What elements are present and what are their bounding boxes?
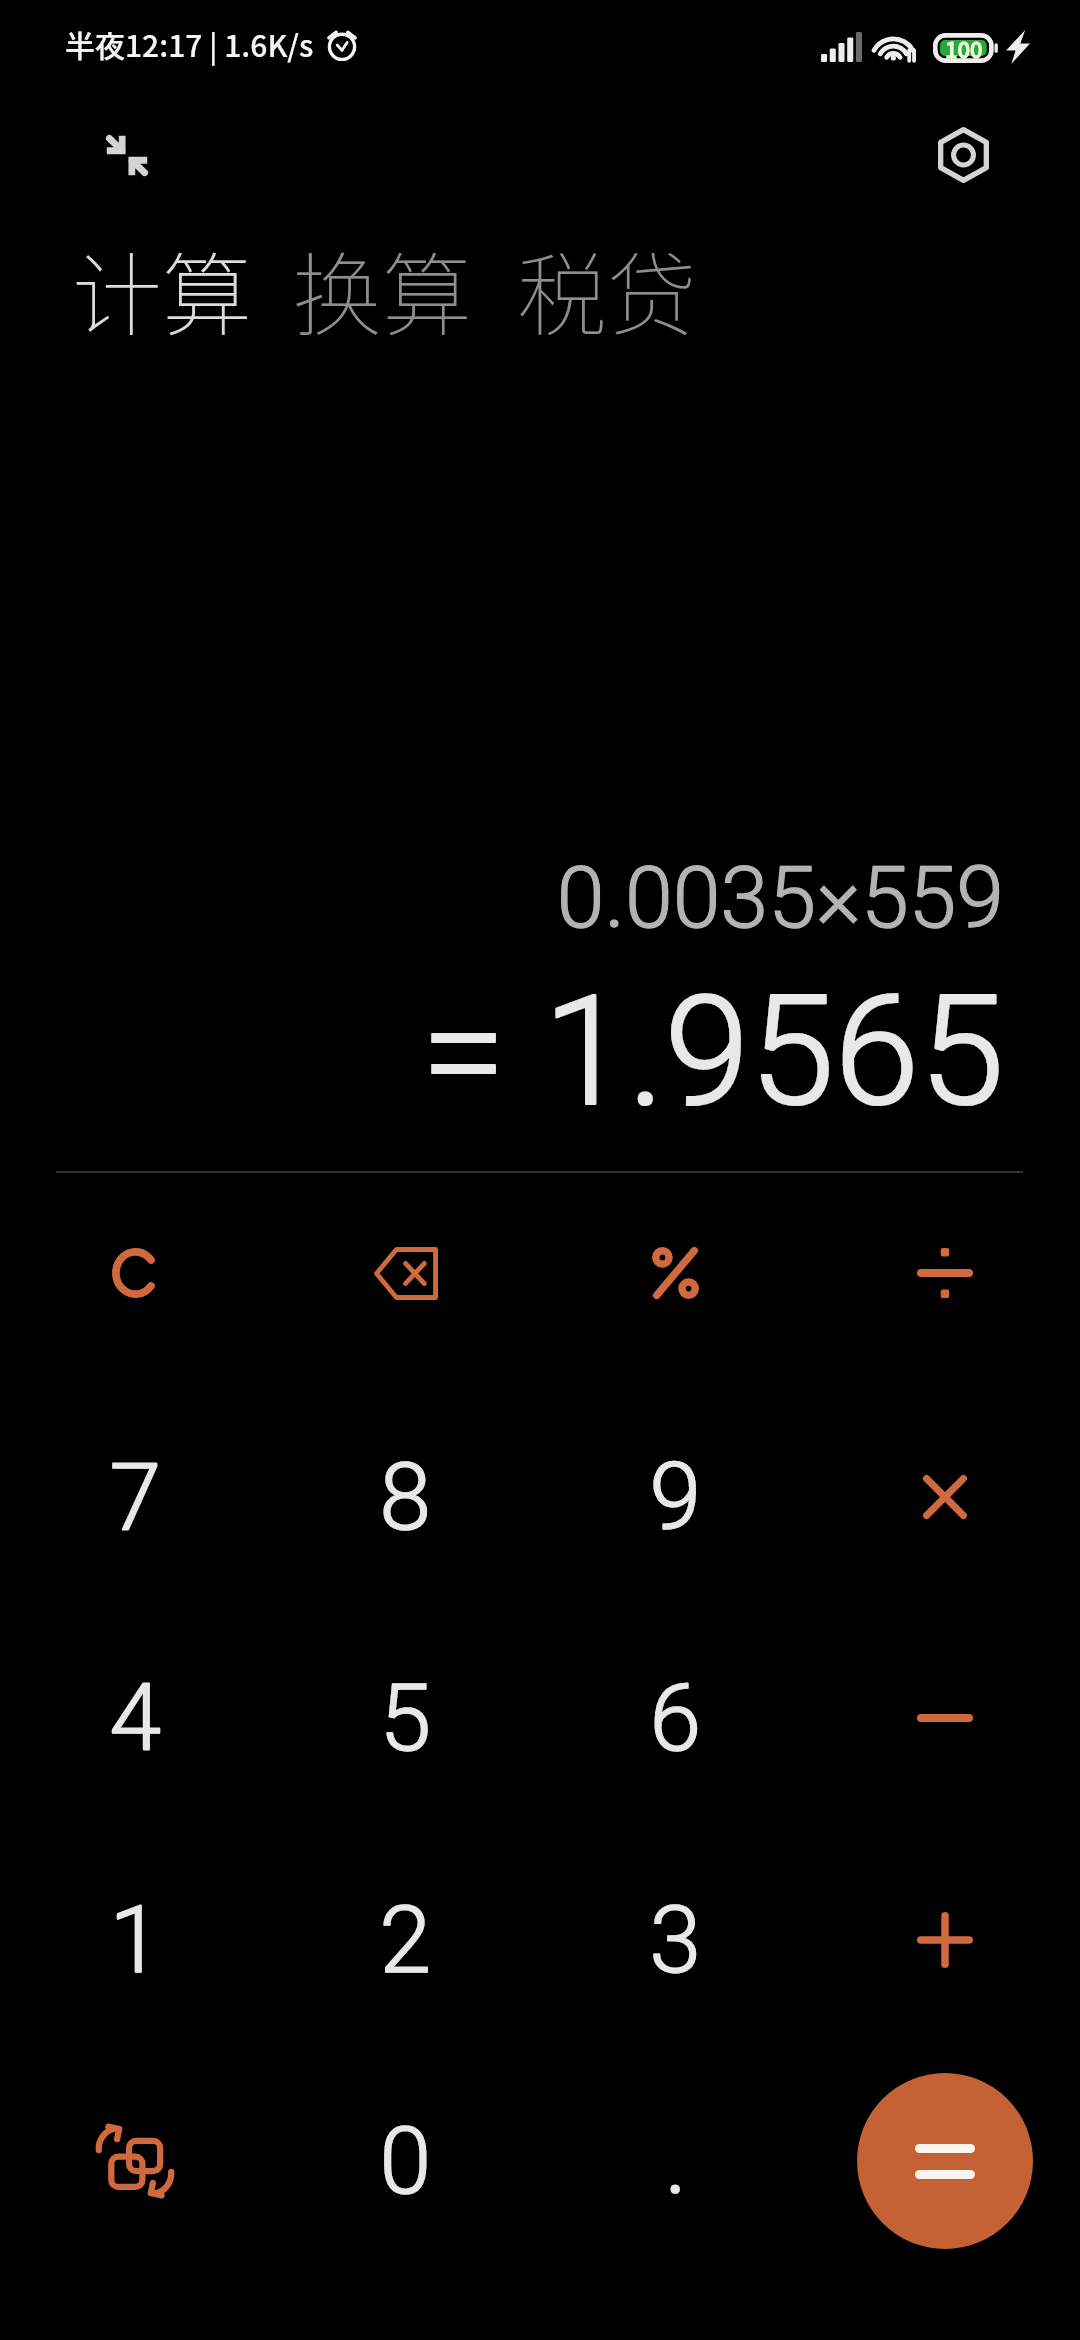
staticText: 3 [649, 1886, 701, 1995]
button[interactable]: Clear [0, 1162, 270, 1384]
button[interactable]: Unit converter [0, 2050, 270, 2272]
staticText: 9 [649, 1443, 701, 1552]
staticText: . [664, 2107, 687, 2216]
staticText: 100 [945, 32, 983, 64]
button[interactable]: 4 [0, 1607, 270, 1829]
button[interactable]: 7 [0, 1386, 270, 1608]
button[interactable]: 3 [540, 1829, 810, 2051]
staticText: 2 [379, 1886, 431, 1995]
button[interactable]: Percent [540, 1162, 810, 1384]
button[interactable]: 9 [540, 1386, 810, 1608]
staticText: . [664, 2107, 687, 2216]
staticText: 6 [649, 1664, 701, 1773]
button[interactable]: 计算 [72, 224, 252, 354]
button[interactable]: 0 [270, 2050, 540, 2272]
staticText: 0.0035×559 [556, 847, 1004, 948]
staticText: 3 [649, 1886, 701, 1995]
staticText: 1 [109, 1886, 161, 1995]
button[interactable]: Collapse [77, 105, 177, 205]
button[interactable]: Backspace [270, 1162, 540, 1384]
button[interactable]: 5 [270, 1607, 540, 1829]
button[interactable]: 2 [270, 1829, 540, 2051]
staticText: 8 [379, 1443, 431, 1552]
button[interactable]: 1 [0, 1829, 270, 2051]
staticText: 税贷 [517, 224, 697, 354]
button[interactable]: Equals [857, 2073, 1033, 2249]
staticText: 6 [649, 1664, 701, 1773]
button[interactable]: Settings [913, 105, 1013, 205]
button[interactable]: 换算 [292, 224, 472, 354]
button[interactable]: . [540, 2050, 810, 2272]
staticText: 5 [379, 1664, 431, 1773]
staticText: 1 [109, 1886, 161, 1995]
staticText: 7 [109, 1443, 161, 1552]
button[interactable]: 8 [270, 1386, 540, 1608]
staticText: 换算 [292, 224, 472, 354]
button[interactable]: Divide [810, 1162, 1080, 1384]
staticText: 7 [109, 1443, 161, 1552]
button[interactable]: 税贷 [517, 224, 697, 354]
staticText: 0 [379, 2107, 431, 2216]
staticText: 0 [379, 2107, 431, 2216]
button[interactable]: Add [810, 1829, 1080, 2051]
staticText: 4 [109, 1664, 161, 1773]
staticText: 半夜12:17 | 1.6K/s [65, 22, 314, 65]
staticText: 2 [379, 1886, 431, 1995]
staticText: 4 [109, 1664, 161, 1773]
staticText: = 1.9565 [421, 962, 1004, 1141]
staticText: 9 [649, 1443, 701, 1552]
staticText: 0.0035×559 [556, 847, 1004, 948]
button[interactable]: Multiply [810, 1386, 1080, 1608]
staticText: 5 [379, 1664, 431, 1773]
staticText: = 1.9565 [421, 962, 1004, 1141]
button[interactable]: Subtract [810, 1607, 1080, 1829]
staticText: 计算 [72, 224, 252, 354]
staticText: 8 [379, 1443, 431, 1552]
button[interactable]: 6 [540, 1607, 810, 1829]
